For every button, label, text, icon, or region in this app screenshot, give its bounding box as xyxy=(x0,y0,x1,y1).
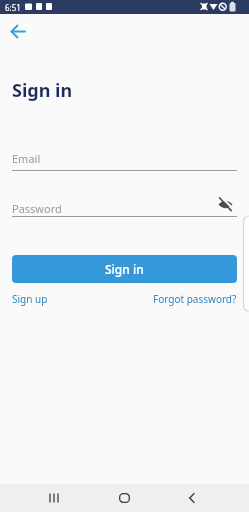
button[interactable]: Forgot password? xyxy=(153,292,237,306)
button[interactable] xyxy=(42,484,66,512)
staticText: Email xyxy=(12,151,41,166)
button[interactable] xyxy=(112,484,136,512)
button[interactable]: Sign up xyxy=(12,292,48,306)
button[interactable] xyxy=(215,195,235,213)
button[interactable]: Sign in xyxy=(12,255,237,283)
staticText: Sign in xyxy=(105,261,144,277)
staticText: Forgot password? xyxy=(153,292,237,306)
staticText: Password xyxy=(12,201,62,216)
staticText: Sign in xyxy=(12,78,73,103)
button[interactable] xyxy=(4,23,32,39)
button[interactable] xyxy=(180,484,204,512)
staticText: Sign up xyxy=(12,292,48,306)
staticText: 6:51 xyxy=(5,2,21,13)
